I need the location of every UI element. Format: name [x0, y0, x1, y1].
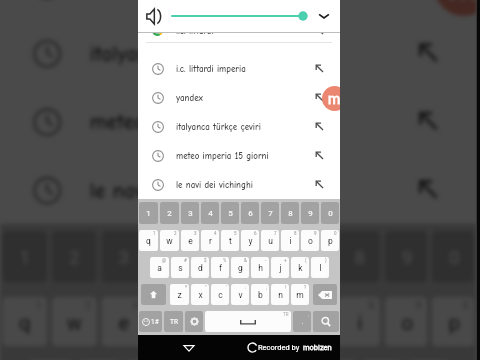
- button[interactable]: Mobizen recorder: [434, 0, 477, 16]
- button[interactable]: o: [385, 297, 427, 346]
- button[interactable]: 5: [196, 231, 238, 283]
- button[interactable]: t: [221, 230, 239, 251]
- button[interactable]: t: [196, 297, 238, 346]
- staticText: ,: [308, 312, 309, 317]
- button[interactable]: k: [291, 257, 309, 278]
- button[interactable]: c: [211, 284, 229, 305]
- button[interactable]: le navi dei vichinghi: [0, 155, 477, 224]
- button[interactable]: 3: [181, 202, 199, 224]
- staticText: p: [448, 311, 460, 335]
- button[interactable]: Mute volume: [146, 8, 163, 25]
- button[interactable]: Shift: [141, 284, 166, 305]
- button[interactable]: p: [432, 297, 474, 346]
- staticText: w: [166, 236, 173, 246]
- button[interactable]: Mobizen recorder: [322, 86, 340, 111]
- button[interactable]: 1: [139, 202, 158, 224]
- button[interactable]: le navi dei vichinghi: [138, 170, 340, 199]
- button[interactable]: 8: [281, 202, 299, 224]
- button[interactable]: TR: [164, 311, 183, 332]
- button[interactable]: yandex: [0, 0, 477, 18]
- button[interactable]: Backspace: [313, 284, 337, 305]
- button[interactable]: Symbols: [139, 311, 162, 332]
- staticText: :: [245, 285, 247, 290]
- button[interactable]: 2: [160, 202, 179, 224]
- button[interactable]: Insert suggestion into search box: [314, 179, 325, 190]
- button[interactable]: Insert suggestion into search box: [314, 92, 325, 103]
- button[interactable]: 8: [337, 231, 380, 283]
- staticText: -: [265, 258, 267, 263]
- button[interactable]: Insert suggestion into search box: [415, 176, 441, 202]
- staticText: !: [285, 285, 287, 290]
- button[interactable]: r: [201, 230, 219, 251]
- button[interactable]: Insert suggestion into search box: [314, 63, 325, 74]
- button[interactable]: Keyboard settings: [185, 311, 203, 332]
- staticText: o: [308, 236, 313, 246]
- staticText: d: [198, 263, 203, 273]
- button[interactable]: e: [101, 297, 144, 346]
- button[interactable]: meteo imperia 15 giorni: [138, 141, 340, 170]
- button[interactable]: y: [241, 230, 259, 251]
- button[interactable]: w: [160, 230, 179, 251]
- button[interactable]: 4: [149, 231, 191, 283]
- button[interactable]: a: [150, 257, 169, 278]
- button[interactable]: u: [261, 230, 279, 251]
- button[interactable]: h: [251, 257, 269, 278]
- button[interactable]: 4: [201, 202, 219, 224]
- button[interactable]: Insert suggestion into search box: [314, 150, 325, 161]
- button[interactable]: w: [52, 297, 97, 346]
- button[interactable]: italyanca türkçe çeviri: [0, 18, 477, 87]
- button[interactable]: o: [301, 230, 319, 251]
- button[interactable]: e: [181, 230, 199, 251]
- button[interactable]: u: [290, 297, 333, 346]
- button[interactable]: g: [231, 257, 249, 278]
- button[interactable]: .: [293, 311, 311, 332]
- button[interactable]: i: [337, 297, 380, 346]
- button[interactable]: meteo imperia 15 giorni: [0, 87, 477, 155]
- button[interactable]: s: [171, 257, 189, 278]
- button[interactable]: b: [251, 284, 269, 305]
- button[interactable]: 7: [290, 231, 333, 283]
- button[interactable]: j: [271, 257, 289, 278]
- staticText: 6: [248, 209, 253, 218]
- staticText: 2: [174, 231, 177, 236]
- button[interactable]: Insert suggestion into search box: [415, 40, 441, 66]
- button[interactable]: Expand volume controls: [317, 9, 331, 23]
- button[interactable]: Search: [313, 311, 339, 332]
- button[interactable]: i: [281, 230, 299, 251]
- button[interactable]: Insert suggestion into search box: [314, 121, 325, 132]
- button[interactable]: Insert suggestion into search box: [415, 108, 441, 134]
- button[interactable]: 6: [243, 231, 286, 283]
- button[interactable]: Space: [205, 311, 291, 332]
- button[interactable]: v: [231, 284, 249, 305]
- button[interactable]: q: [139, 230, 158, 251]
- button[interactable]: z: [170, 284, 189, 305]
- button[interactable]: 9: [301, 202, 319, 224]
- button[interactable]: p: [321, 230, 339, 251]
- button[interactable]: 6: [241, 202, 259, 224]
- button[interactable]: i.c. littardi imperia: [138, 54, 340, 83]
- button[interactable]: Back: [183, 342, 195, 354]
- button[interactable]: y: [243, 297, 286, 346]
- button[interactable]: n: [271, 284, 289, 305]
- button[interactable]: 5: [221, 202, 239, 224]
- button[interactable]: x: [191, 284, 209, 305]
- button[interactable]: q: [2, 297, 47, 346]
- button[interactable]: 7: [261, 202, 279, 224]
- staticText: 0: [448, 247, 460, 268]
- button[interactable]: italyanca türkçe çeviri: [138, 112, 340, 141]
- staticText: y: [248, 236, 253, 246]
- button[interactable]: yandex: [138, 83, 340, 112]
- button[interactable]: 0: [321, 202, 339, 224]
- button[interactable]: 3: [101, 231, 144, 283]
- button[interactable]: l: [311, 257, 329, 278]
- button[interactable]: f: [211, 257, 229, 278]
- button[interactable]: r: [149, 297, 191, 346]
- button[interactable]: m: [291, 284, 309, 305]
- button[interactable]: d: [191, 257, 209, 278]
